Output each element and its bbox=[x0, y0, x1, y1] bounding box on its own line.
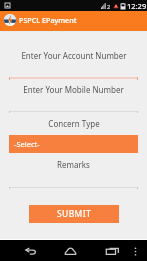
staticText: -Select- bbox=[14, 139, 40, 149]
staticText: Enter Your Mobile Number bbox=[23, 84, 124, 95]
button[interactable]: More options bbox=[127, 243, 143, 259]
button[interactable]: Recent apps bbox=[103, 241, 123, 261]
button[interactable]: Back bbox=[21, 241, 41, 261]
staticText: 2 bbox=[107, 3, 111, 10]
button[interactable]: -Select- bbox=[9, 135, 138, 153]
staticText: Remarks bbox=[57, 159, 90, 170]
staticText: 12:29 bbox=[127, 1, 147, 11]
staticText: SUBMIT bbox=[57, 208, 92, 220]
staticText: Concern Type bbox=[48, 118, 100, 129]
staticText: Enter Your Account Number bbox=[21, 50, 127, 61]
staticText: PSPCL EPayment bbox=[19, 15, 77, 25]
button[interactable]: SUBMIT bbox=[29, 205, 119, 223]
button[interactable]: Home bbox=[60, 241, 80, 261]
